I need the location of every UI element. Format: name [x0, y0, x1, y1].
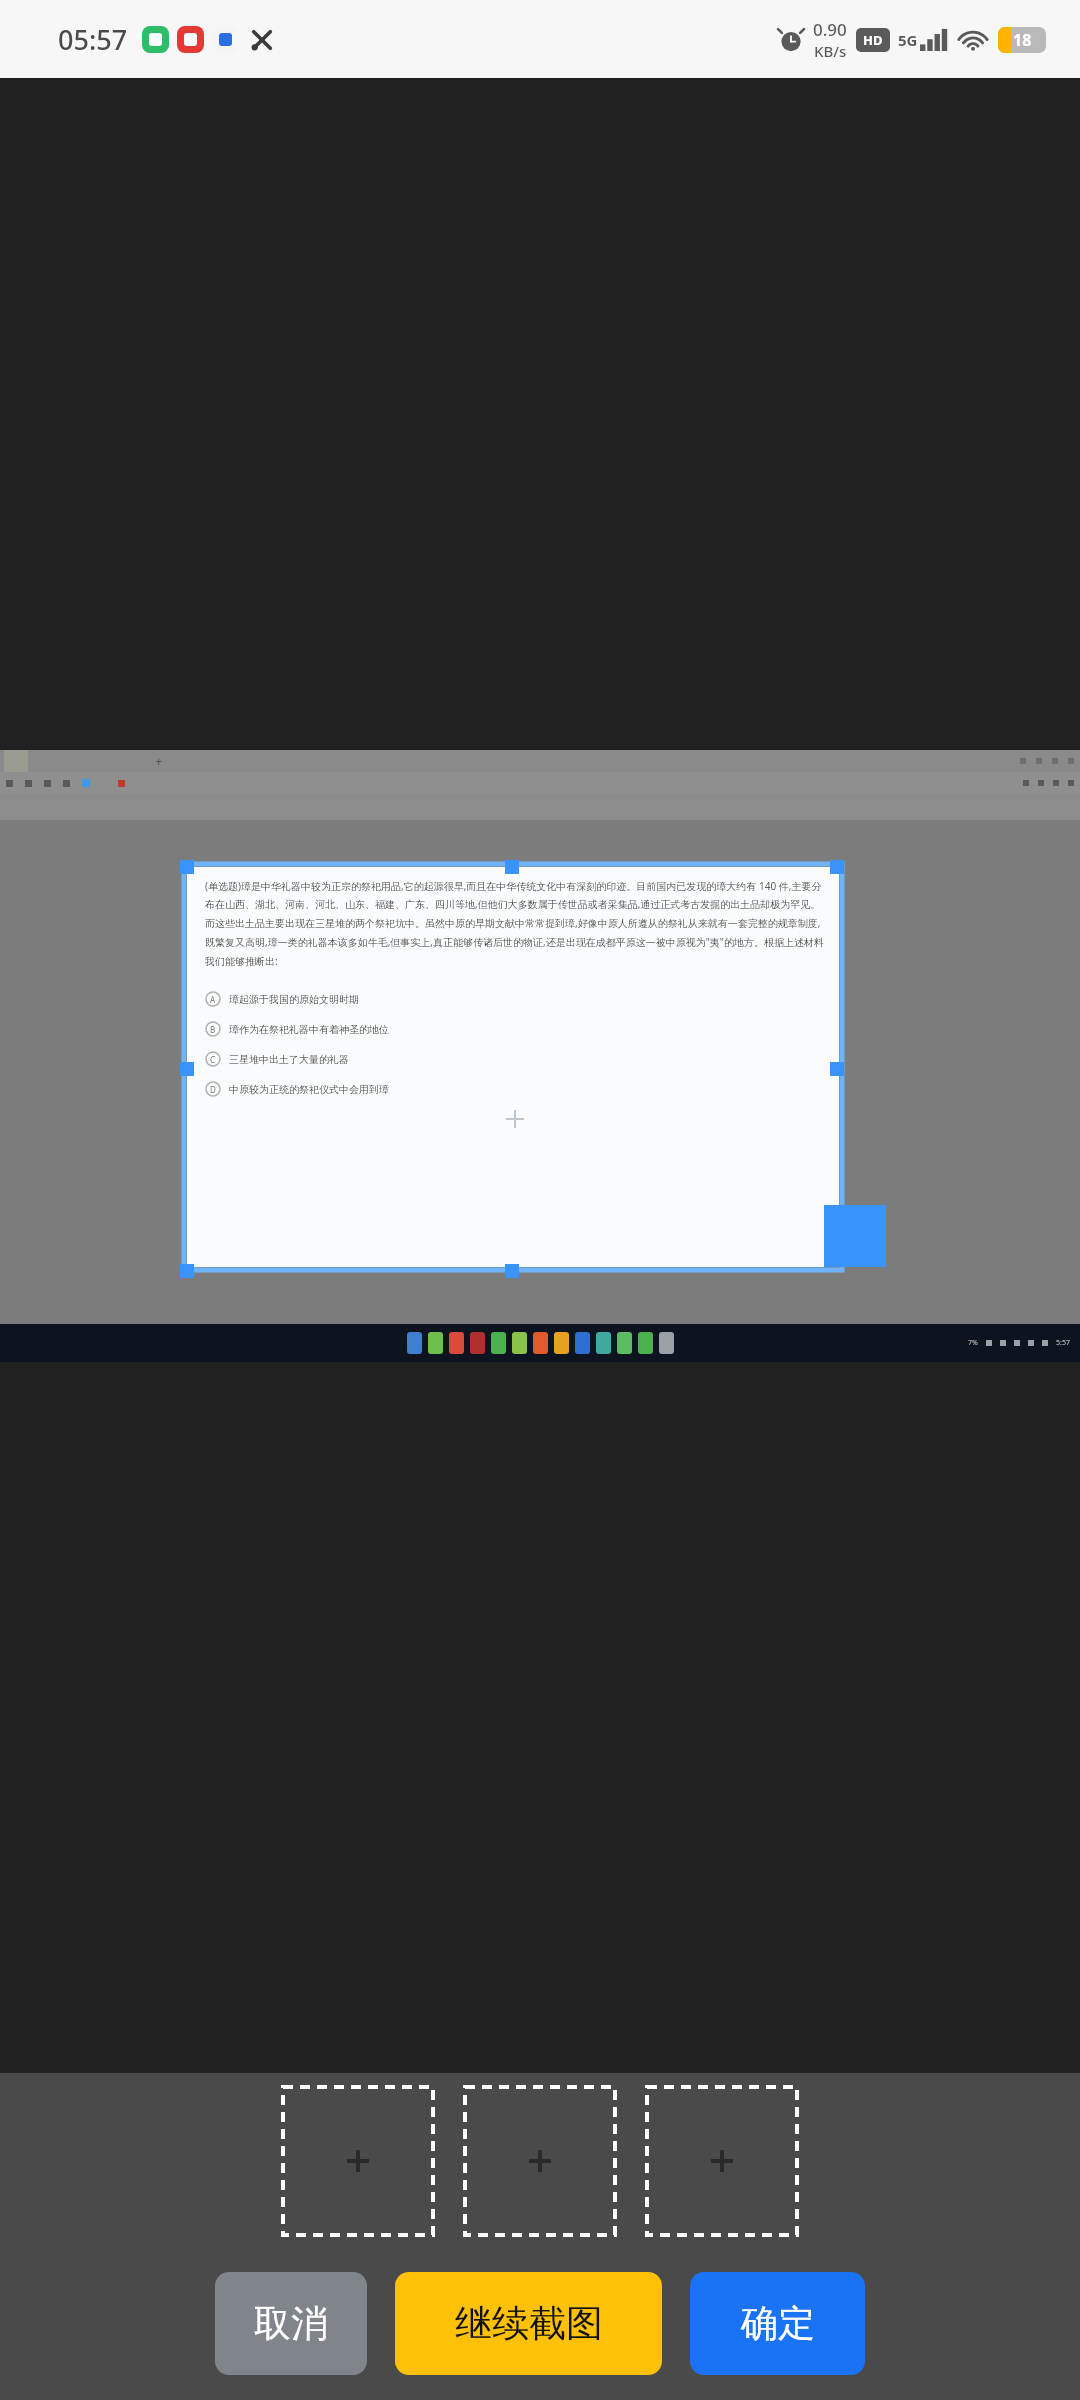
- staticText: 5G: [898, 30, 918, 50]
- staticText: HD: [863, 31, 883, 49]
- staticText: A: [210, 994, 216, 1005]
- button[interactable]: Add screenshot: [647, 2087, 797, 2235]
- staticText: 中原较为正统的祭祀仪式中会用到璋: [229, 1083, 389, 1096]
- staticText: 继续截图: [455, 2300, 603, 2347]
- staticText: KB/s: [814, 41, 847, 61]
- button[interactable]: 继续截图: [395, 2272, 662, 2375]
- staticText: C: [210, 1054, 216, 1065]
- staticText: 18: [1013, 29, 1032, 51]
- staticText: D: [210, 1084, 216, 1095]
- staticText: 三星堆中出土了大量的礼器: [229, 1053, 349, 1066]
- button[interactable]: Add screenshot: [283, 2087, 433, 2235]
- staticText: +: [155, 752, 163, 770]
- button[interactable]: 确定: [690, 2272, 865, 2375]
- button[interactable]: 取消: [215, 2272, 367, 2375]
- staticText: 璋起源于我国的原始文明时期: [229, 993, 359, 1006]
- staticText: 05:57: [58, 21, 128, 58]
- staticText: B: [210, 1024, 216, 1035]
- staticText: 0.90: [813, 18, 847, 41]
- button[interactable]: Add screenshot: [465, 2087, 615, 2235]
- staticText: 璋作为在祭祀礼器中有着神圣的地位: [229, 1023, 389, 1036]
- staticText: 取消: [254, 2300, 328, 2347]
- staticText: 7%: [968, 1338, 978, 1348]
- staticText: 5:57: [1056, 1338, 1070, 1348]
- staticText: (单选题)璋是中华礼器中较为正宗的祭祀用品,它的起源很早,而且在中华传统文化中有…: [205, 879, 825, 968]
- staticText: 确定: [741, 2300, 815, 2347]
